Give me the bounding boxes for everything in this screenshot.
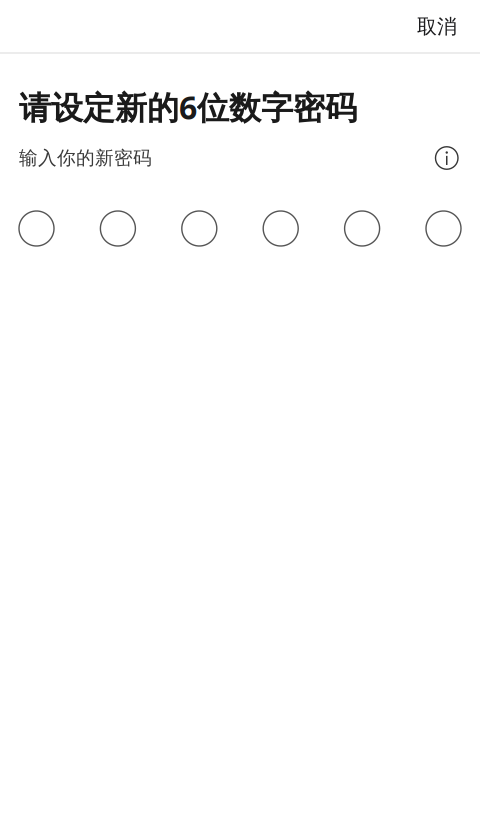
button[interactable]: 取消 bbox=[406, 0, 468, 53]
staticText: 请设定新的6位数字密码 bbox=[19, 86, 357, 128]
staticText: 取消 bbox=[417, 14, 457, 39]
staticText: 输入你的新密码 bbox=[19, 146, 152, 169]
button[interactable]: 密码说明 bbox=[435, 147, 461, 169]
button[interactable]: 密码输入框 bbox=[19, 211, 461, 246]
